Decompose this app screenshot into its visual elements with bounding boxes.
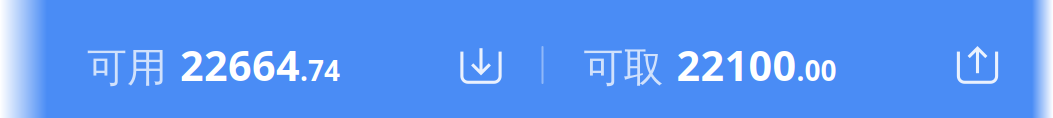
staticText: 22664 (180, 38, 300, 92)
staticText: 可用 (87, 43, 167, 92)
button[interactable]: 可用 (87, 38, 340, 92)
button[interactable]: Deposit (460, 46, 501, 84)
staticText: 可取 (583, 43, 663, 92)
staticText: .74 (300, 52, 340, 89)
button[interactable]: 可取 (583, 38, 836, 92)
staticText: .00 (796, 52, 836, 89)
staticText: 22100 (676, 38, 796, 92)
button[interactable]: Withdraw (957, 46, 998, 84)
